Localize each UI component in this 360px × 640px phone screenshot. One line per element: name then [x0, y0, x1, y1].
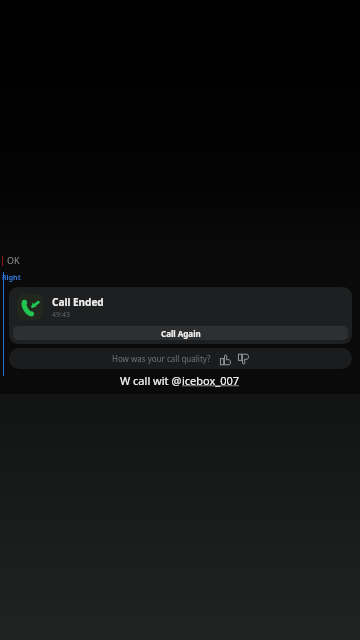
staticText: Call Again	[161, 328, 201, 339]
staticText: How was your call quality?	[112, 353, 211, 364]
button[interactable]: Thumbs down	[236, 352, 250, 366]
staticText: OK	[7, 254, 20, 266]
button[interactable]: Call Again	[13, 326, 348, 340]
staticText: 49:43	[52, 310, 70, 320]
staticText: Right	[2, 273, 21, 283]
staticText: Call Ended	[52, 295, 104, 309]
button[interactable]: icebox_007	[182, 373, 240, 388]
button[interactable]: Thumbs up	[218, 352, 232, 366]
staticText: W call wit @	[120, 373, 182, 388]
